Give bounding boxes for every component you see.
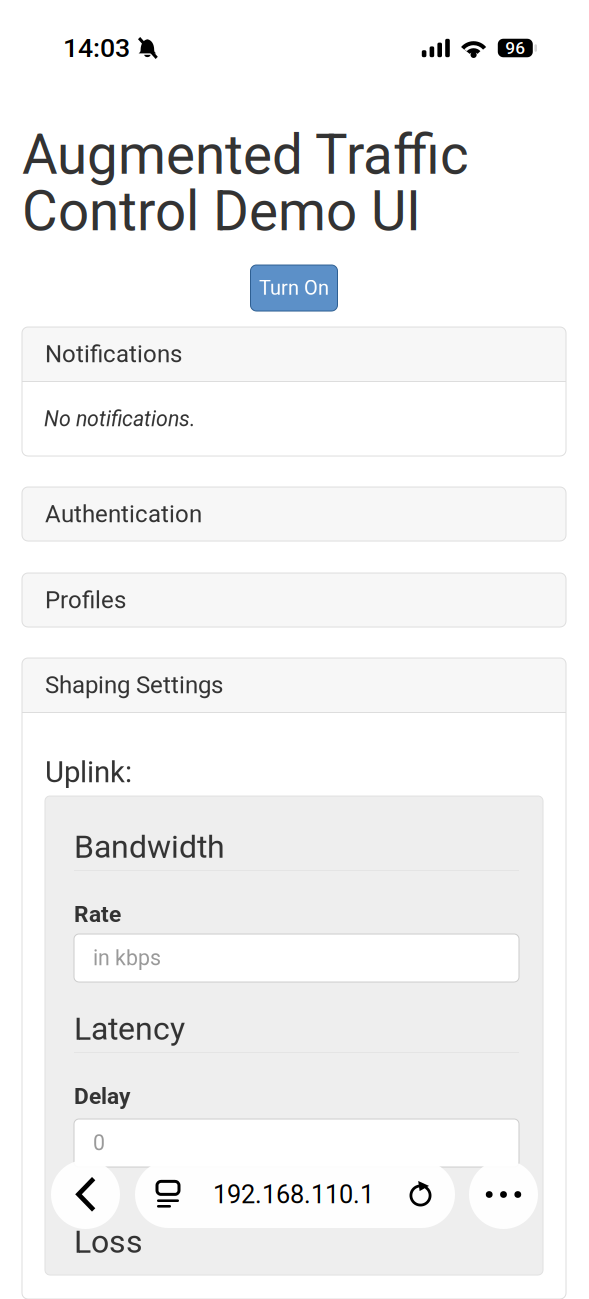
staticText: Latency bbox=[74, 1010, 185, 1047]
staticText: No notifications. bbox=[44, 406, 195, 431]
staticText: 192.168.110.1 bbox=[213, 1180, 374, 1209]
staticText: Uplink: bbox=[45, 755, 132, 789]
button[interactable]: Authentication bbox=[22, 487, 566, 541]
staticText: Delay bbox=[74, 1083, 130, 1110]
staticText: Profiles bbox=[45, 586, 126, 614]
staticText: Augmented Traffic bbox=[22, 123, 469, 187]
staticText: 0 bbox=[93, 1130, 105, 1155]
button[interactable]: More bbox=[469, 1160, 538, 1229]
staticText: Control Demo UI bbox=[22, 179, 421, 244]
staticText: Authentication bbox=[45, 500, 202, 528]
staticText: 14:03 bbox=[63, 32, 130, 64]
staticText: Notifications bbox=[45, 340, 182, 368]
staticText: 96 bbox=[505, 38, 525, 58]
button[interactable]: 192.168.110.1 bbox=[135, 1161, 455, 1228]
staticText: Bandwidth bbox=[74, 828, 225, 865]
staticText: Shaping Settings bbox=[45, 671, 223, 699]
staticText: Turn On bbox=[259, 276, 329, 300]
button[interactable]: Profiles bbox=[22, 573, 566, 627]
button[interactable]: Turn On bbox=[250, 265, 337, 311]
staticText: Loss bbox=[74, 1223, 143, 1260]
button[interactable]: Back bbox=[51, 1160, 120, 1229]
staticText: in kbps bbox=[93, 945, 161, 970]
staticText: Rate bbox=[74, 901, 121, 928]
